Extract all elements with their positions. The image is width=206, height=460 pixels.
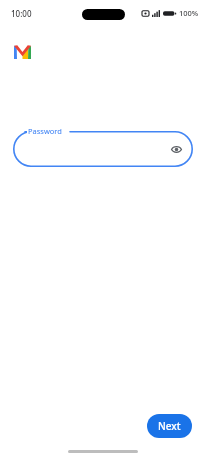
staticText: Next	[158, 419, 181, 433]
staticText: Password	[28, 126, 62, 136]
button[interactable]: Show password	[168, 141, 184, 157]
staticText: 100%	[179, 8, 199, 18]
button[interactable]: Next	[147, 414, 192, 438]
button[interactable]: Password	[13, 131, 193, 167]
staticText: 10:00	[11, 8, 32, 19]
